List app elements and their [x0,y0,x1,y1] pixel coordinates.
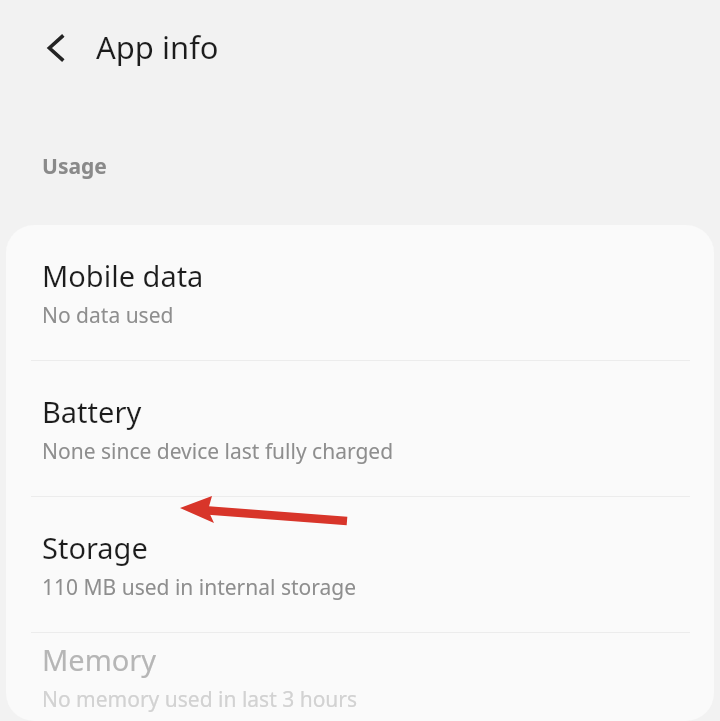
button[interactable]: Battery [6,361,714,496]
button[interactable]: Storage [6,497,714,632]
staticText: Usage [42,152,107,181]
staticText: None since device last fully charged [42,437,394,466]
staticText: 110 MB used in internal storage [42,573,357,602]
staticText: Battery [42,392,142,431]
button[interactable]: Memory [6,633,714,721]
staticText: No data used [42,301,174,330]
button[interactable]: Mobile data [6,225,714,360]
staticText: No memory used in last 3 hours [42,685,358,714]
button[interactable]: Back [30,22,82,74]
staticText: Memory [42,640,157,679]
staticText: App info [96,26,219,68]
staticText: Storage [42,528,148,567]
staticText: Mobile data [42,256,204,295]
